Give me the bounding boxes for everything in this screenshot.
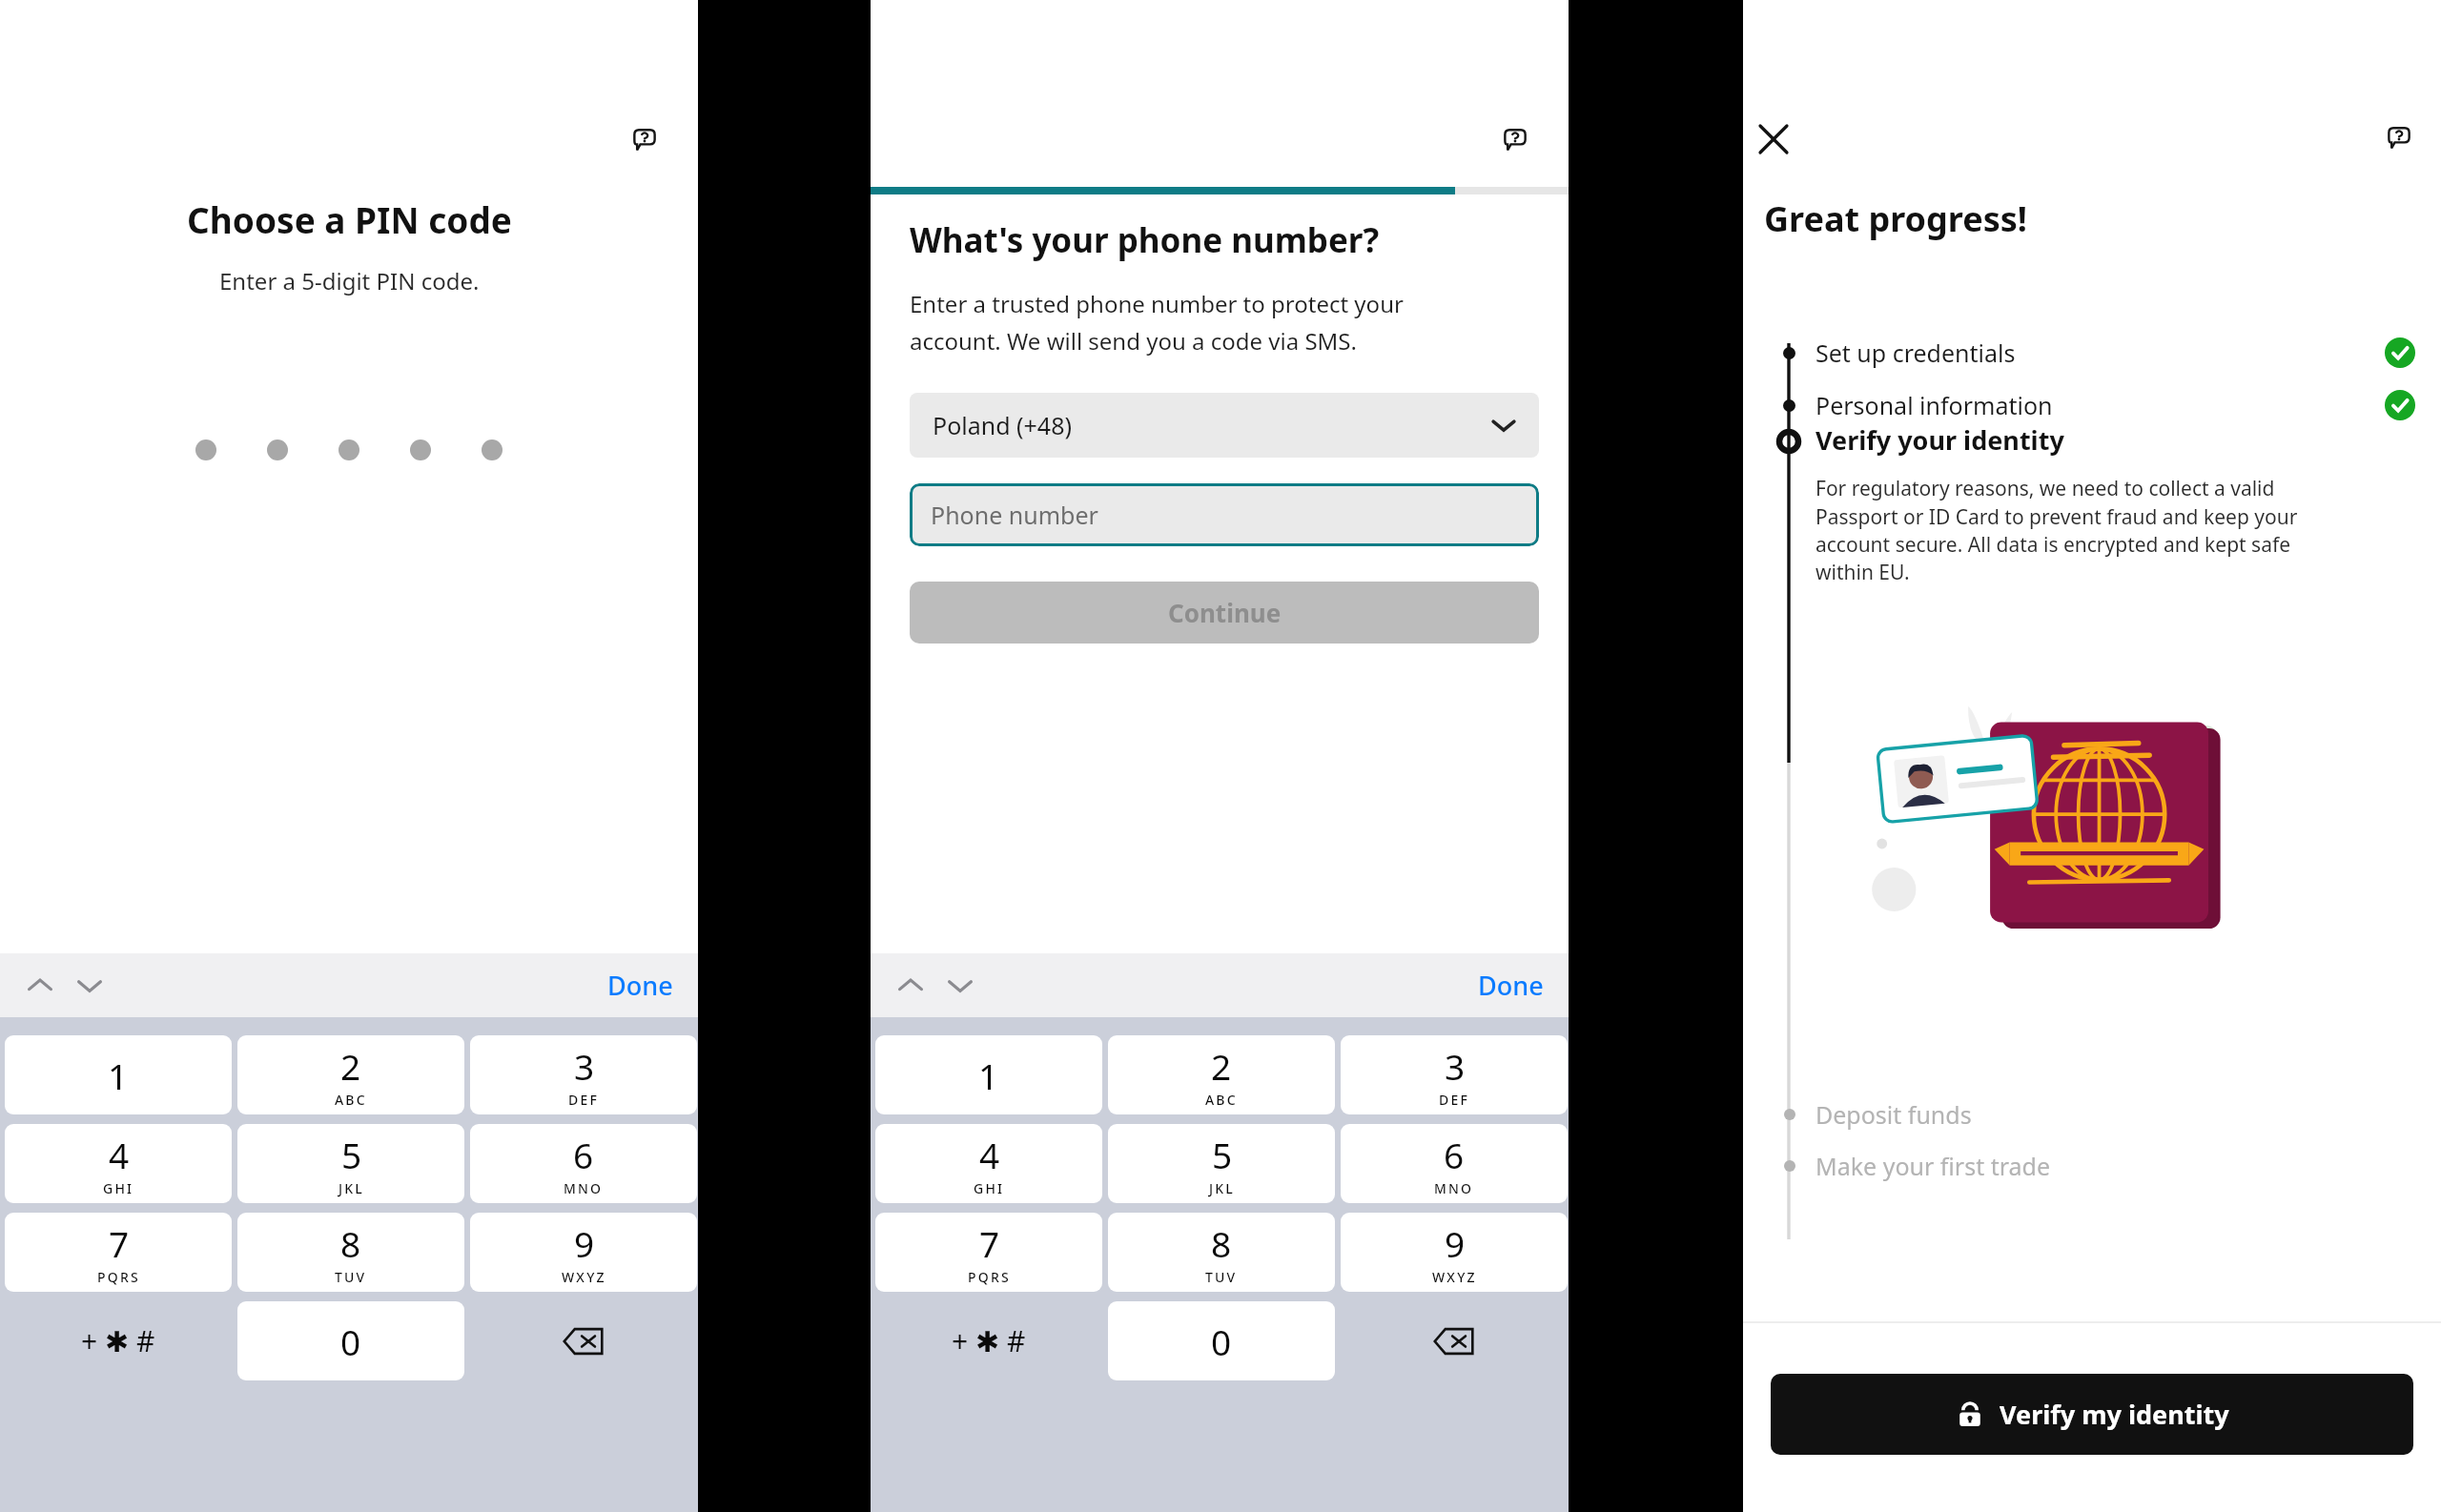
button[interactable]: 7: [5, 1213, 232, 1292]
staticText: 4: [979, 1131, 1000, 1178]
button[interactable]: 5: [237, 1124, 464, 1203]
staticText: 7: [979, 1219, 1000, 1267]
button[interactable]: 9: [1341, 1213, 1568, 1292]
button[interactable]: 7: [875, 1213, 1102, 1292]
button[interactable]: Poland (+48): [910, 393, 1539, 458]
staticText: ABC: [335, 1091, 367, 1109]
staticText: 9: [574, 1219, 595, 1267]
staticText: For regulatory reasons, we need to colle…: [1815, 475, 2298, 585]
button[interactable]: Deposit funds: [1743, 1092, 2441, 1137]
staticText: 6: [573, 1131, 594, 1178]
staticText: Make your first trade: [1815, 1150, 2051, 1182]
staticText: Enter a 5-digit PIN code.: [219, 265, 480, 296]
staticText: Set up credentials: [1815, 337, 2016, 369]
button[interactable]: Help: [1488, 114, 1542, 168]
button[interactable]: Done: [1453, 960, 1569, 1011]
staticText: 5: [341, 1131, 362, 1178]
staticText: + ✱ #: [952, 1321, 1026, 1360]
button[interactable]: 1: [5, 1035, 232, 1114]
button[interactable]: Continue: [910, 582, 1539, 644]
button[interactable]: 0: [237, 1301, 464, 1380]
staticText: TUV: [335, 1268, 367, 1286]
button[interactable]: 4: [875, 1124, 1102, 1203]
staticText: 3: [574, 1042, 595, 1090]
button[interactable]: Backspace: [1341, 1301, 1568, 1380]
staticText: PQRS: [97, 1268, 140, 1286]
staticText: Deposit funds: [1815, 1098, 1972, 1131]
staticText: Verify your identity: [1815, 422, 2064, 458]
staticText: GHI: [103, 1179, 134, 1197]
button[interactable]: 1: [875, 1035, 1102, 1114]
button[interactable]: Help: [618, 114, 671, 168]
button[interactable]: Make your first trade: [1743, 1143, 2441, 1189]
button[interactable]: Previous field: [888, 963, 933, 1009]
staticText: 7: [109, 1219, 130, 1267]
button[interactable]: 3: [470, 1035, 697, 1114]
staticText: Continue: [1168, 596, 1282, 629]
staticText: 2: [340, 1042, 361, 1090]
button[interactable]: Verify your identity: [1815, 422, 2411, 585]
staticText: Poland (+48): [933, 409, 1072, 441]
button[interactable]: 3: [1341, 1035, 1568, 1114]
staticText: 1: [108, 1052, 129, 1099]
button[interactable]: Symbols: [5, 1301, 232, 1380]
staticText: 2: [1211, 1042, 1232, 1090]
button[interactable]: Next field: [937, 963, 983, 1009]
staticText: Verify my identity: [2000, 1397, 2229, 1432]
button[interactable]: 8: [237, 1213, 464, 1292]
staticText: Personal information: [1815, 389, 2053, 421]
staticText: Enter a trusted phone number to protect …: [910, 288, 1404, 357]
staticText: Great progress!: [1764, 195, 2028, 242]
staticText: PQRS: [968, 1268, 1011, 1286]
button[interactable]: Close: [1747, 112, 1800, 166]
button[interactable]: Phone number: [910, 483, 1539, 546]
staticText: WXYZ: [562, 1268, 606, 1286]
staticText: Done: [607, 968, 673, 1003]
button[interactable]: 8: [1108, 1213, 1335, 1292]
staticText: JKL: [338, 1179, 364, 1197]
staticText: WXYZ: [1432, 1268, 1477, 1286]
staticText: 3: [1445, 1042, 1466, 1090]
staticText: 1: [978, 1052, 999, 1099]
staticText: 4: [109, 1131, 130, 1178]
staticText: + ✱ #: [81, 1321, 155, 1360]
button[interactable]: 6: [470, 1124, 697, 1203]
staticText: ABC: [1205, 1091, 1238, 1109]
button[interactable]: 6: [1341, 1124, 1568, 1203]
staticText: 0: [340, 1318, 361, 1365]
staticText: JKL: [1209, 1179, 1235, 1197]
staticText: 0: [1211, 1318, 1232, 1365]
button[interactable]: 2: [1108, 1035, 1335, 1114]
staticText: DEF: [568, 1091, 600, 1109]
button[interactable]: Backspace: [470, 1301, 697, 1380]
staticText: 9: [1445, 1219, 1466, 1267]
staticText: Choose a PIN code: [187, 195, 512, 243]
button[interactable]: Next field: [67, 963, 113, 1009]
staticText: Done: [1478, 968, 1544, 1003]
staticText: 5: [1212, 1131, 1233, 1178]
button[interactable]: Done: [583, 960, 698, 1011]
staticText: MNO: [564, 1179, 604, 1197]
button[interactable]: Previous field: [17, 963, 63, 1009]
button[interactable]: 9: [470, 1213, 697, 1292]
button[interactable]: Personal information: [1743, 381, 2441, 429]
button[interactable]: 5: [1108, 1124, 1335, 1203]
staticText: GHI: [974, 1179, 1005, 1197]
staticText: 8: [340, 1219, 361, 1267]
staticText: TUV: [1205, 1268, 1238, 1286]
staticText: DEF: [1439, 1091, 1470, 1109]
button[interactable]: Help: [2372, 112, 2426, 166]
button[interactable]: Symbols: [875, 1301, 1102, 1380]
button[interactable]: 0: [1108, 1301, 1335, 1380]
button[interactable]: 2: [237, 1035, 464, 1114]
button[interactable]: 4: [5, 1124, 232, 1203]
staticText: 8: [1211, 1219, 1232, 1267]
button[interactable]: Set up credentials: [1743, 329, 2441, 377]
staticText: MNO: [1434, 1179, 1474, 1197]
staticText: What's your phone number?: [910, 217, 1380, 263]
staticText: 6: [1444, 1131, 1465, 1178]
button[interactable]: Verify my identity: [1771, 1374, 2413, 1455]
staticText: Phone number: [931, 499, 1098, 531]
